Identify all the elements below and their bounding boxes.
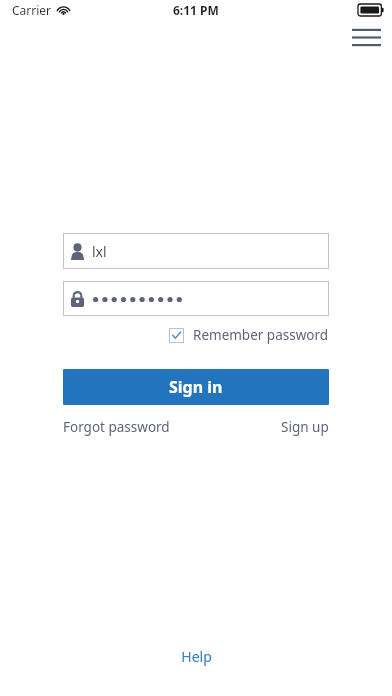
button[interactable]: Help — [167, 643, 226, 670]
staticText: lxl — [92, 242, 107, 261]
staticText: Help — [181, 647, 212, 666]
button[interactable]: lxl — [63, 233, 329, 269]
button[interactable]: Menu — [344, 22, 388, 52]
staticText: Carrier — [12, 2, 52, 18]
staticText: 6:11 PM — [173, 2, 219, 18]
staticText: Forgot password — [63, 418, 170, 436]
staticText: Sign up — [281, 418, 329, 436]
staticText: Sign in — [169, 376, 223, 398]
staticText: Remember password — [193, 326, 329, 344]
button[interactable]: Sign up — [281, 415, 329, 439]
button[interactable]: Forgot password — [63, 415, 170, 439]
button[interactable]: Sign in — [63, 369, 329, 405]
button[interactable]: Remember password — [169, 324, 329, 346]
button[interactable] — [63, 281, 329, 316]
